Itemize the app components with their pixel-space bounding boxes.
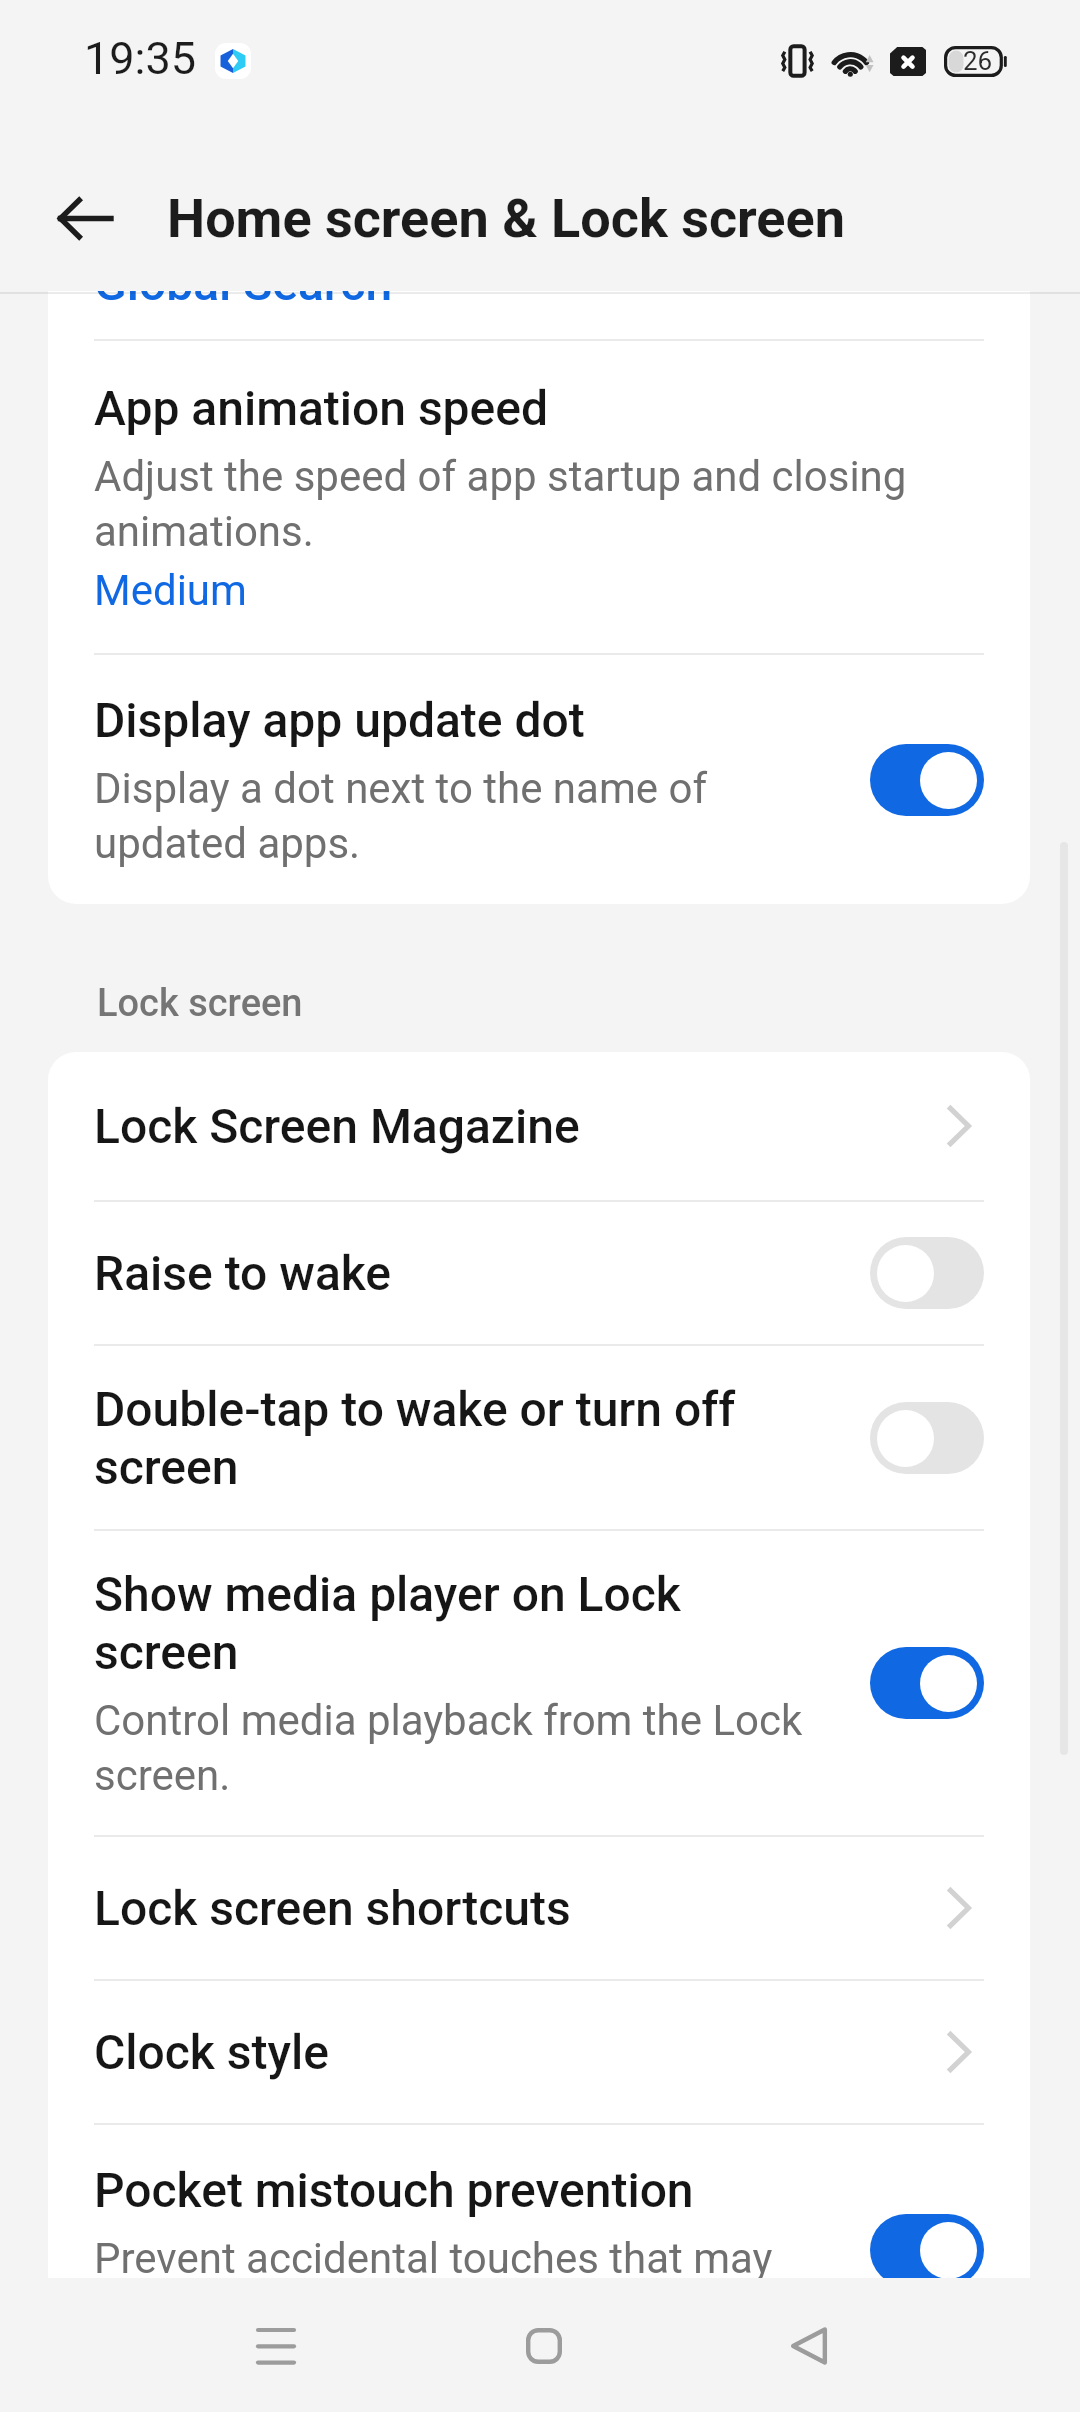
button[interactable]: Lock Screen Magazine	[48, 1052, 1030, 1200]
button[interactable]: App animation speed	[48, 341, 1030, 653]
button[interactable]: Back	[36, 170, 132, 266]
button[interactable]: Lock screen shortcuts	[48, 1837, 1030, 1979]
button[interactable]: Raise to wake	[48, 1202, 1030, 1344]
button[interactable]: Clock style	[48, 1981, 1030, 2123]
button[interactable]: Global Search	[48, 291, 1030, 339]
staticText: App animation speed	[94, 379, 549, 437]
button[interactable]: Recent apps	[216, 2286, 336, 2406]
button[interactable]: Display app update dot	[48, 655, 1030, 904]
staticText: Lock screen	[97, 981, 303, 1026]
button[interactable]: Home	[484, 2286, 604, 2406]
staticText: Home screen & Lock screen	[167, 187, 845, 250]
button[interactable]: Back	[749, 2286, 869, 2406]
staticText: Lock screen shortcuts	[94, 1879, 571, 1937]
button[interactable]: Open	[912, 1872, 984, 1944]
staticText: Prevent accidental touches that may be r…	[94, 2229, 814, 2280]
staticText: Pocket mistouch prevention	[94, 2161, 694, 2219]
staticText: Display a dot next to the name of update…	[94, 759, 814, 869]
button[interactable]: Open	[912, 1090, 984, 1162]
button[interactable]: Switch off	[870, 1402, 984, 1474]
staticText: 19:35	[84, 32, 197, 85]
button[interactable]: Switch on	[870, 744, 984, 816]
button[interactable]: Open	[912, 2016, 984, 2088]
staticText: Clock style	[94, 2023, 329, 2081]
staticText: Control media playback from the Lock scr…	[94, 1691, 814, 1801]
staticText: Lock Screen Magazine	[94, 1097, 580, 1155]
staticText: 26	[963, 46, 993, 76]
button[interactable]: Switch off	[870, 1237, 984, 1309]
staticText: Medium	[94, 561, 247, 616]
staticText: Double-tap to wake or turn off screen	[94, 1380, 814, 1496]
button[interactable]: Double-tap to wake or turn off screen	[48, 1346, 1030, 1529]
staticText: Raise to wake	[94, 1244, 392, 1302]
button[interactable]: Show media player on Lock screen	[48, 1531, 1030, 1835]
staticText: Adjust the speed of app startup and clos…	[94, 447, 984, 557]
button[interactable]: Pocket mistouch prevention	[48, 2125, 1030, 2280]
button[interactable]: Switch on	[870, 2214, 984, 2280]
staticText: Global Search	[94, 291, 393, 312]
button[interactable]: Switch on	[870, 1647, 984, 1719]
staticText: Show media player on Lock screen	[94, 1565, 814, 1681]
staticText: Display app update dot	[94, 691, 585, 749]
